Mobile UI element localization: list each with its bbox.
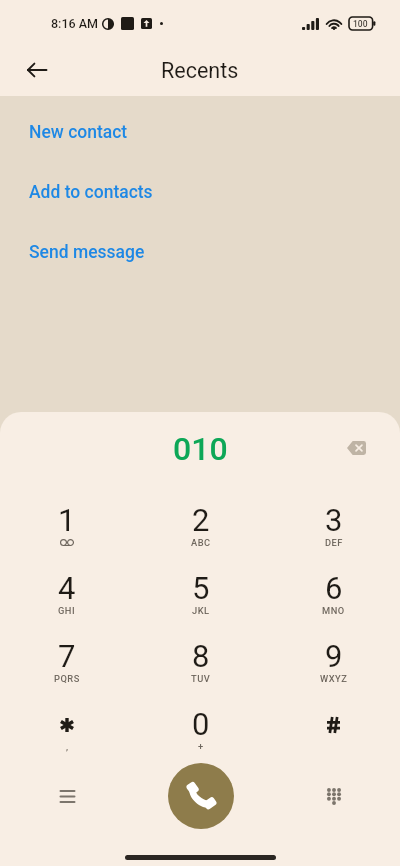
staticText: WXYZ (320, 673, 348, 684)
button[interactable] (267, 691, 400, 759)
button[interactable]: 0 (134, 691, 267, 759)
staticText: Send message (29, 242, 145, 263)
staticText: 3 (325, 502, 343, 538)
staticText: TUV (191, 673, 211, 684)
staticText: 5 (192, 570, 210, 606)
button[interactable]: Backspace (336, 428, 376, 468)
button[interactable]: , (0, 691, 134, 759)
staticText: Add to contacts (29, 182, 153, 203)
button[interactable]: 7 (0, 623, 134, 691)
button[interactable]: Call log menu (45, 774, 89, 818)
staticText: ABC (191, 537, 211, 548)
staticText: 0 (192, 706, 210, 742)
staticText: , (66, 741, 69, 752)
staticText: New contact (29, 122, 128, 143)
staticText: 8:16 AM (51, 16, 98, 31)
staticText: + (198, 741, 204, 752)
staticText: 1 (58, 502, 76, 538)
button[interactable]: 6 (267, 555, 400, 623)
staticText: 4 (58, 570, 76, 606)
staticText: 7 (58, 638, 76, 674)
button[interactable]: Back (14, 47, 60, 93)
button[interactable]: Dialpad (312, 774, 356, 818)
button[interactable]: Send message (0, 240, 400, 264)
button[interactable]: 3 (267, 487, 400, 555)
button[interactable]: Add to contacts (0, 180, 400, 204)
button[interactable]: 5 (134, 555, 267, 623)
staticText: DEF (325, 537, 343, 548)
staticText: 8 (192, 638, 210, 674)
button[interactable]: 4 (0, 555, 134, 623)
button[interactable]: 9 (267, 623, 400, 691)
staticText: 2 (192, 502, 210, 538)
button[interactable]: 8 (134, 623, 267, 691)
button[interactable]: New contact (0, 120, 400, 144)
button[interactable]: Call (168, 763, 234, 829)
staticText: 100 (353, 19, 368, 29)
staticText: 010 (173, 430, 228, 468)
button[interactable]: 2 (134, 487, 267, 555)
staticText: PQRS (54, 673, 80, 684)
button[interactable]: 1 (0, 487, 134, 555)
staticText: MNO (322, 605, 345, 616)
staticText: 9 (325, 638, 343, 674)
staticText: 6 (325, 570, 343, 606)
staticText: Recents (161, 58, 239, 83)
staticText: GHI (58, 605, 76, 616)
staticText: JKL (192, 605, 210, 616)
